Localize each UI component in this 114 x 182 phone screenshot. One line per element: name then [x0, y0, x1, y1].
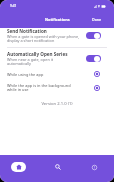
button[interactable] — [86, 55, 101, 62]
button[interactable]: Home — [0, 155, 38, 182]
staticText: Automatically Open Series — [7, 51, 68, 57]
button[interactable]: Search — [38, 155, 76, 182]
button[interactable]: Automatically Open Series — [0, 51, 114, 66]
button[interactable]: Done — [86, 14, 114, 25]
button[interactable] — [93, 70, 101, 78]
staticText: Notifications — [45, 17, 70, 22]
button[interactable] — [86, 32, 101, 39]
staticText: While using the app — [7, 72, 90, 77]
staticText: Version 2.1.0 (1) — [0, 101, 114, 107]
button[interactable]: While using the app — [0, 70, 114, 78]
button[interactable] — [93, 84, 101, 92]
staticText: Done — [92, 17, 102, 22]
staticText: 9:41 — [10, 4, 17, 8]
staticText: While the app is in the background while… — [7, 83, 90, 93]
button[interactable]: Send Notification — [0, 28, 114, 43]
staticText: When a gate is opened with your phone, d… — [7, 34, 80, 43]
button[interactable]: While the app is in the background while… — [0, 83, 114, 93]
staticText: Send Notification — [7, 28, 47, 34]
staticText: When near a gate, open it automatically — [7, 57, 54, 66]
button[interactable]: Info — [76, 155, 114, 182]
